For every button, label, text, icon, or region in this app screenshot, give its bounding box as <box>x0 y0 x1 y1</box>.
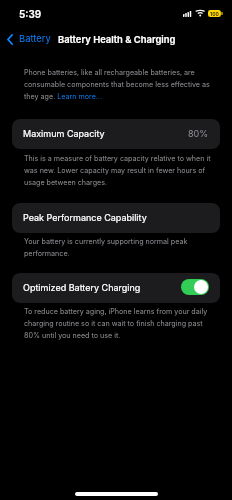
staticText: Battery Health & Charging <box>58 34 176 45</box>
button[interactable]: Optimized Battery Charging <box>12 273 220 303</box>
staticText: was new. Lower capacity may result in fe… <box>24 166 206 175</box>
staticText: they age. Learn more... <box>24 92 102 101</box>
staticText: Your battery is currently supporting nor… <box>24 237 188 246</box>
staticText: Battery <box>19 33 51 44</box>
staticText: Maximum Capacity <box>23 128 105 139</box>
staticText: To reduce battery aging, iPhone learns f… <box>24 307 208 316</box>
button[interactable]: Back to Battery <box>3 31 57 49</box>
staticText: charging routine so it can wait to finis… <box>24 319 203 328</box>
staticText: 5:39 <box>19 8 42 20</box>
staticText: This is a measure of battery capacity re… <box>24 154 211 163</box>
staticText: Phone batteries, like all rechargeable b… <box>24 68 195 77</box>
staticText: 80% <box>188 128 209 139</box>
button[interactable]: Maximum Capacity <box>12 119 220 149</box>
button[interactable]: Peak Performance Capability <box>12 203 220 233</box>
staticText: Optimized Battery Charging <box>23 282 141 293</box>
staticText: 100 <box>210 11 219 17</box>
staticText: performance. <box>24 249 70 258</box>
staticText: 80% until you need to use it. <box>24 331 121 340</box>
staticText: usage between charges. <box>24 178 108 187</box>
staticText: Peak Performance Capability <box>23 212 147 223</box>
staticText: consumable components that become less e… <box>24 80 210 89</box>
button[interactable]: Optimized Battery Charging, on <box>181 279 209 295</box>
